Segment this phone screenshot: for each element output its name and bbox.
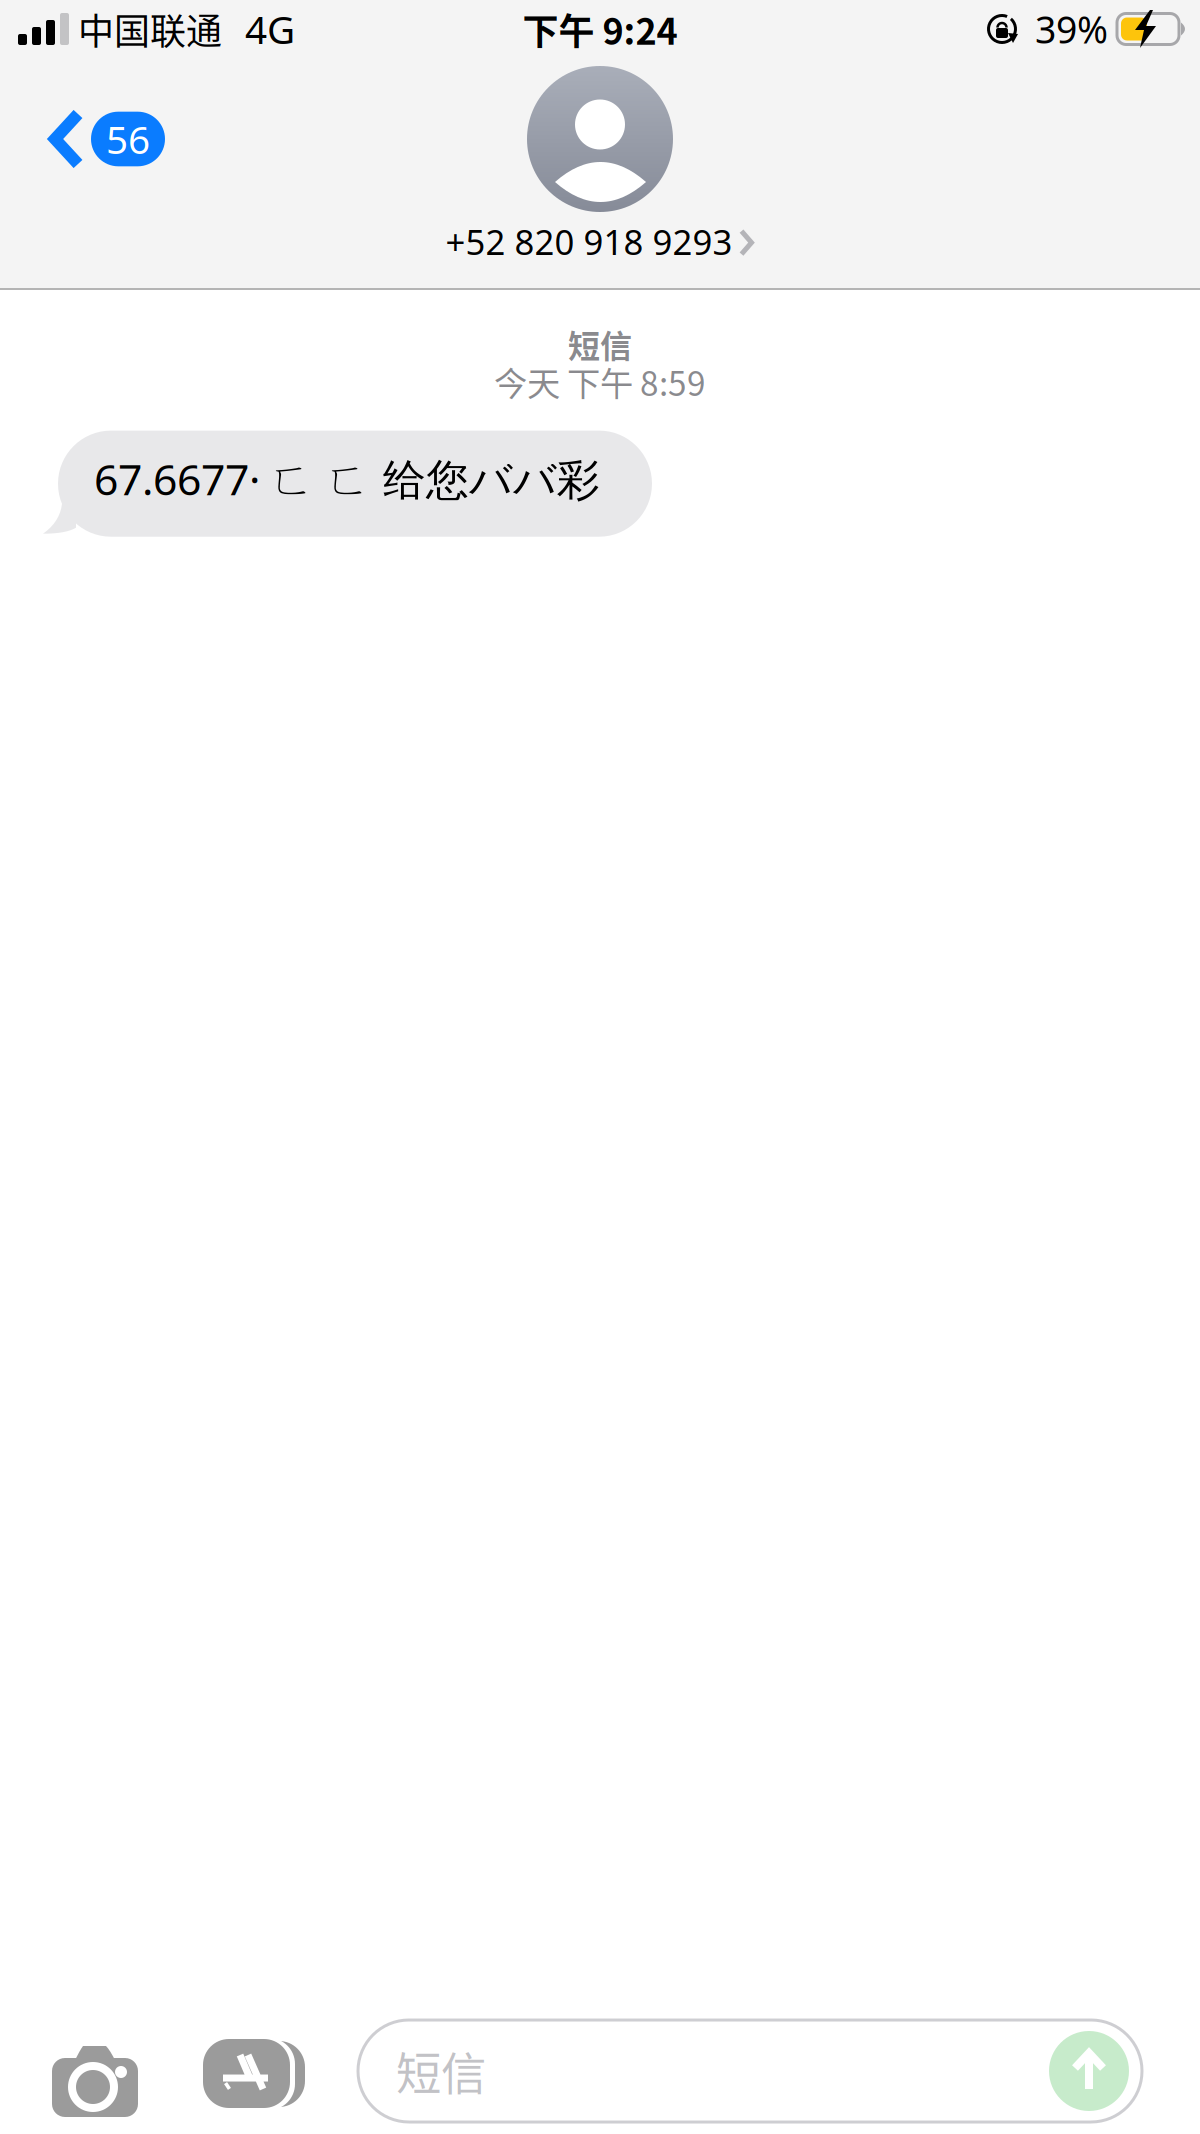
staticText: 下午 9:24 (522, 3, 677, 55)
staticText: 56 (106, 113, 150, 165)
staticText: 短信 (568, 321, 632, 367)
button[interactable]: Camera (42, 2030, 148, 2132)
button[interactable]: Send (1049, 2031, 1129, 2111)
button[interactable]: Apps (193, 2028, 315, 2122)
staticText: 67.6677· ㄈ ㄈ 给您ババ彩 (94, 450, 600, 508)
button[interactable]: Back (0, 99, 195, 179)
staticText: 4G (245, 3, 295, 55)
staticText: 39% (1035, 4, 1108, 54)
staticText: +52 820 918 9293 (445, 218, 732, 265)
staticText: 中国联通 (78, 3, 222, 55)
staticText: 今天 下午 8:59 (494, 357, 706, 406)
staticText: 短信 (396, 2038, 486, 2104)
